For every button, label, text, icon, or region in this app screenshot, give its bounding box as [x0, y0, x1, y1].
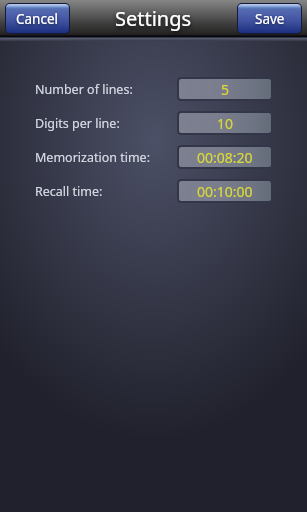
staticText: 10: [217, 114, 234, 133]
staticText: Memorization time:: [35, 149, 151, 166]
staticText: 5: [221, 80, 230, 99]
button[interactable]: Cancel: [6, 4, 69, 33]
button[interactable]: 5: [179, 79, 271, 99]
staticText: Save: [255, 10, 285, 28]
staticText: Recall time:: [35, 183, 103, 200]
staticText: 00:10:00: [197, 182, 253, 201]
button[interactable]: 00:10:00: [179, 181, 271, 201]
button[interactable]: 10: [179, 113, 271, 133]
staticText: Number of lines:: [35, 81, 133, 98]
button[interactable]: Save: [238, 4, 301, 33]
staticText: Cancel: [16, 10, 59, 28]
staticText: Settings: [115, 5, 192, 32]
button[interactable]: 00:08:20: [179, 147, 271, 167]
staticText: Digits per line:: [35, 115, 120, 132]
staticText: 00:08:20: [197, 148, 253, 167]
